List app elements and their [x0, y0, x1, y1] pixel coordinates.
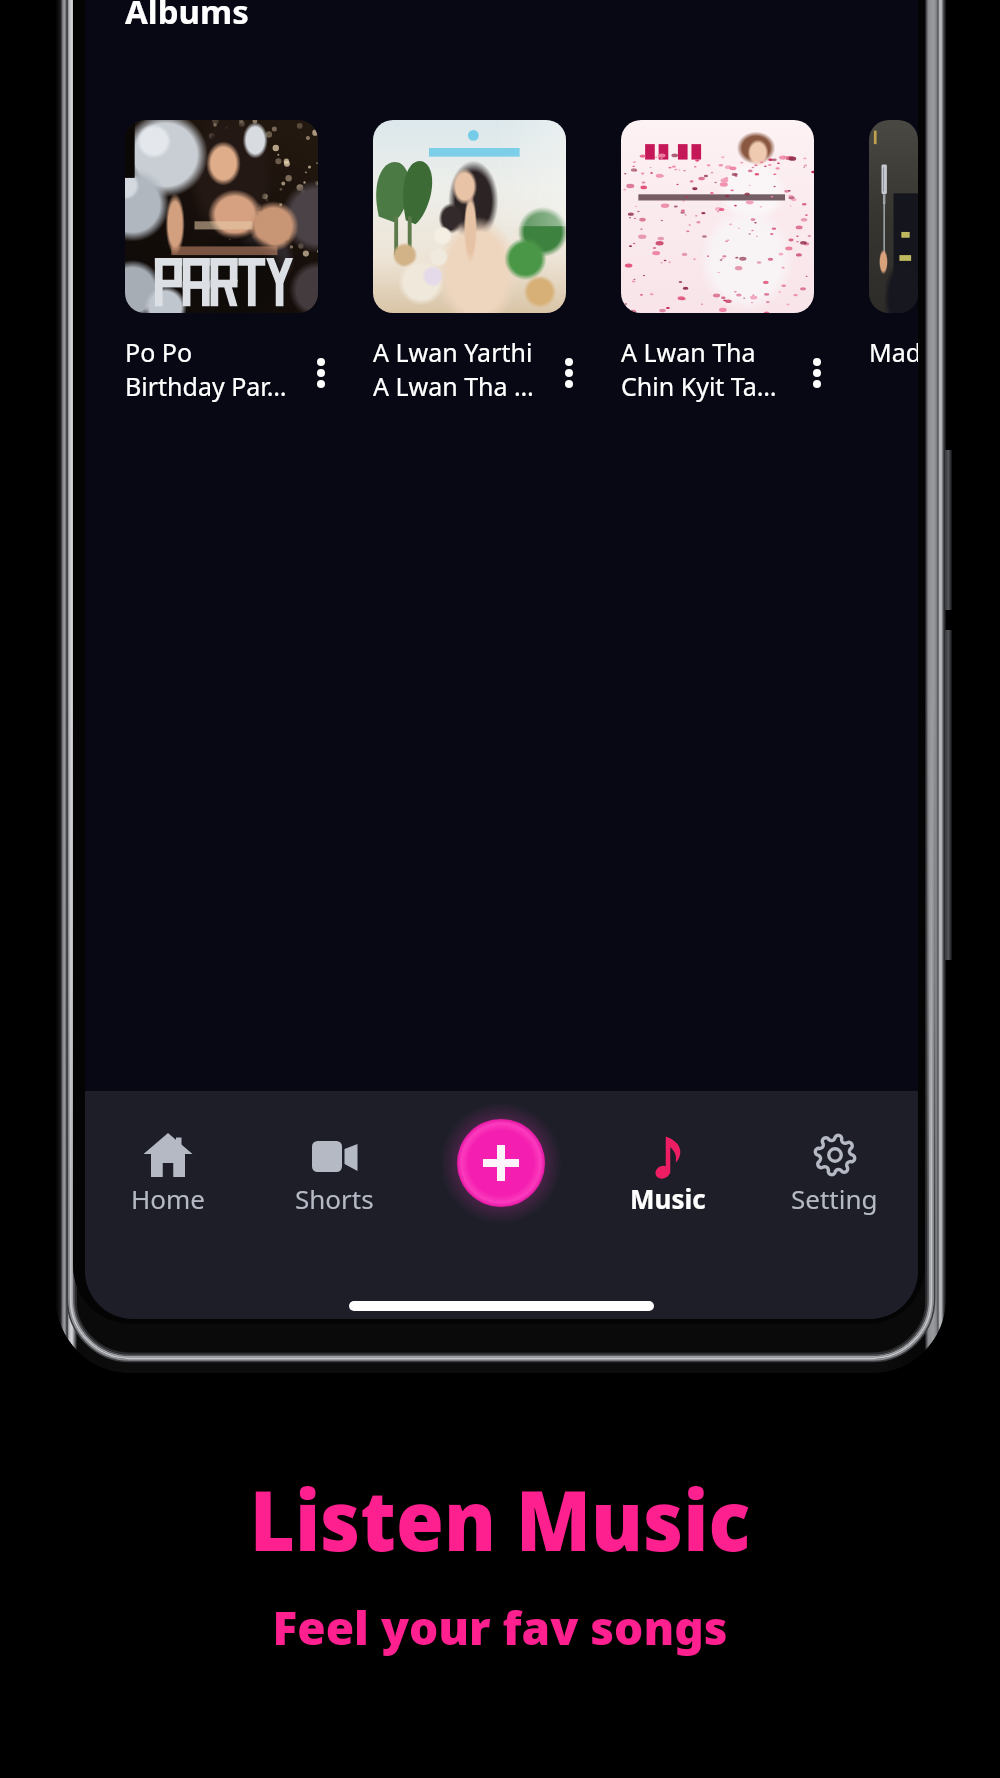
button[interactable]: A Lwan Tha — [621, 120, 814, 411]
staticText: Music — [630, 1181, 706, 1216]
staticText: A Lwan Tha … — [373, 369, 534, 403]
staticText: Shorts — [295, 1181, 374, 1216]
staticText: Albums — [125, 0, 249, 34]
button[interactable]: Setting — [751, 1103, 918, 1216]
button[interactable]: More options — [304, 356, 338, 390]
button[interactable]: Madi — [869, 120, 918, 411]
staticText: Chin Kyit Ta… — [621, 369, 777, 403]
button[interactable]: Music — [584, 1103, 751, 1216]
staticText: Birthday Par… — [125, 369, 287, 403]
button[interactable]: More options — [552, 356, 586, 390]
staticText: Home — [131, 1181, 205, 1216]
button[interactable]: More options — [800, 356, 834, 390]
staticText: Po Po — [125, 335, 193, 369]
button[interactable]: Po Po — [125, 120, 318, 411]
staticText: Feel your fav songs — [272, 1596, 728, 1659]
staticText: Setting — [791, 1181, 878, 1216]
staticText: A Lwan Tha — [621, 335, 756, 369]
staticText: Listen Music — [249, 1462, 751, 1575]
staticText: A Lwan Yarthi — [373, 335, 533, 369]
staticText: Madi — [869, 335, 918, 369]
button[interactable]: Home — [85, 1103, 251, 1216]
button[interactable]: Shorts — [251, 1103, 417, 1216]
button[interactable]: Add — [440, 1102, 562, 1224]
button[interactable]: A Lwan Yarthi — [373, 120, 566, 411]
